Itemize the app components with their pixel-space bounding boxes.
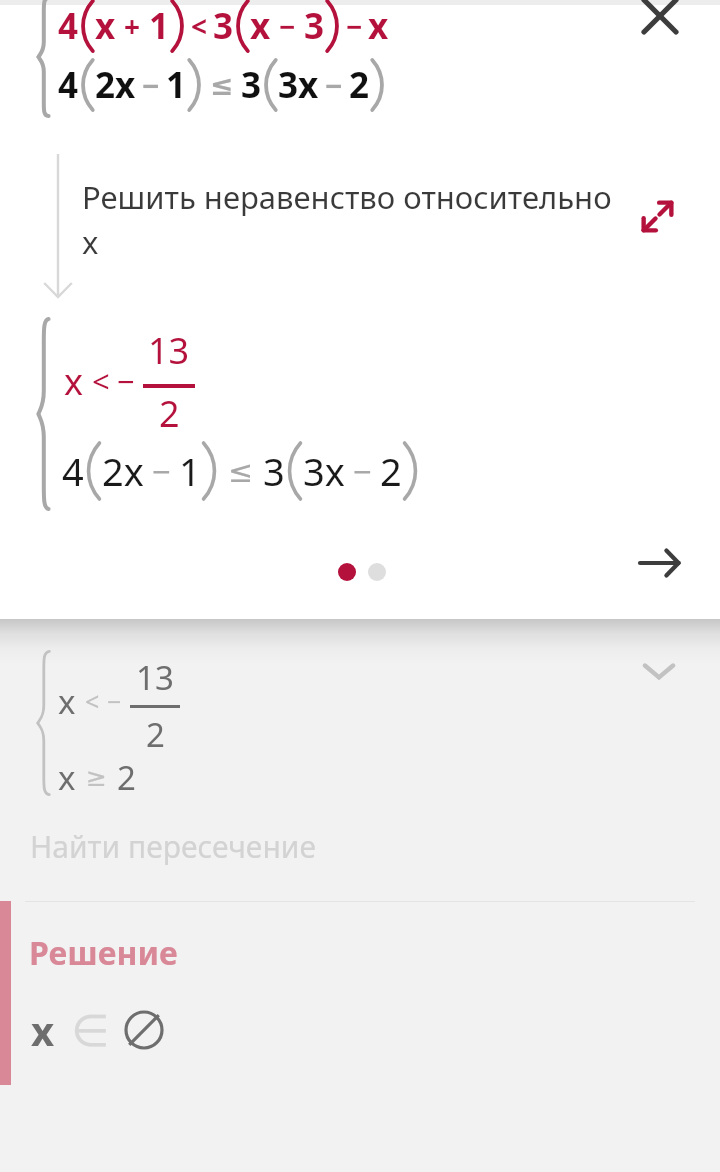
staticText: x — [368, 2, 389, 50]
staticText: < — [191, 7, 208, 45]
staticText: 1 — [166, 61, 187, 109]
staticText: x — [64, 357, 84, 406]
button[interactable] — [0, 665, 720, 900]
staticText: Решить неравенство относительно x — [82, 176, 618, 263]
staticText: x — [31, 1003, 55, 1057]
staticText: 2x — [102, 445, 144, 497]
staticText: − — [279, 7, 296, 45]
staticText: − — [353, 449, 372, 494]
staticText: − — [325, 65, 343, 106]
staticText: Решение — [29, 931, 178, 975]
staticText: 2 — [159, 389, 180, 436]
button[interactable]: Next — [620, 524, 698, 602]
staticText: 13 — [136, 655, 174, 700]
staticText: − — [117, 360, 135, 402]
staticText: 1 — [179, 445, 201, 497]
staticText: 4 — [58, 2, 79, 50]
staticText: − — [107, 684, 122, 718]
staticText: Найти пересечение — [30, 826, 316, 867]
staticText: 3 — [241, 61, 262, 109]
staticText: 3 — [263, 445, 285, 497]
staticText: x — [250, 2, 271, 50]
staticText: 1 — [149, 2, 170, 50]
button[interactable]: Expand section — [620, 632, 698, 710]
staticText: 4 — [62, 445, 84, 497]
staticText: ∈ — [71, 1005, 110, 1056]
staticText: 3 — [213, 2, 234, 50]
staticText: 2 — [349, 61, 370, 109]
staticText: 3x — [303, 445, 345, 497]
staticText: 2 — [146, 712, 165, 747]
staticText: ≥ — [86, 763, 107, 792]
staticText: − — [152, 449, 171, 494]
staticText: + — [124, 7, 141, 45]
staticText: 3x — [278, 61, 319, 109]
button[interactable] — [0, 0, 720, 619]
staticText: x — [58, 755, 76, 800]
button[interactable]: Expand — [624, 183, 690, 249]
staticText: 13 — [148, 326, 190, 375]
staticText: − — [346, 7, 363, 45]
staticText: 4 — [58, 61, 79, 109]
staticText: 2 — [117, 755, 136, 800]
staticText: x — [95, 2, 116, 50]
button[interactable]: Close — [622, 0, 698, 54]
staticText: < — [92, 360, 110, 402]
staticText: 2 — [380, 445, 402, 497]
staticText: − — [142, 65, 160, 106]
staticText: 2x — [95, 61, 136, 109]
staticText: < — [85, 684, 100, 718]
staticText: 3 — [304, 2, 325, 50]
staticText: ≤ — [228, 454, 254, 489]
staticText: x — [58, 679, 76, 724]
staticText: ≤ — [210, 69, 234, 102]
